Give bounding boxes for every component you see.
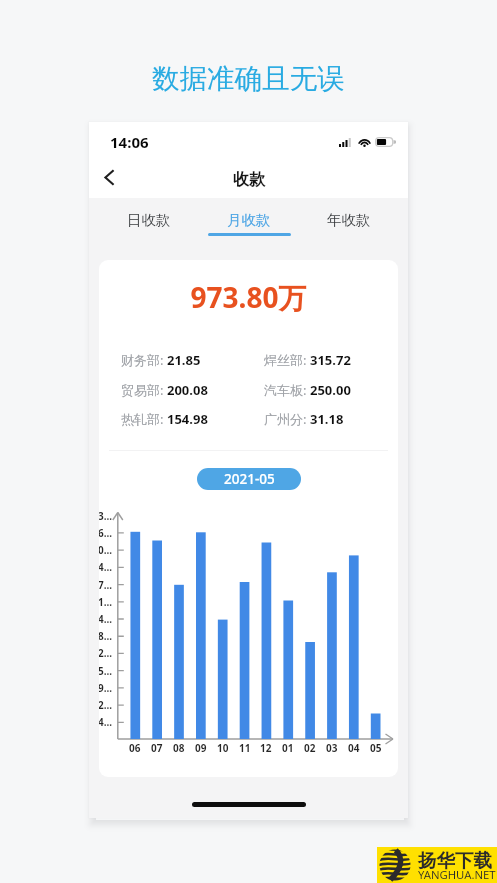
staticText: 财务部: bbox=[121, 351, 167, 369]
staticText: 数据准确且无误 bbox=[152, 62, 345, 97]
staticText: 08 bbox=[173, 741, 185, 755]
staticText: 0... bbox=[99, 543, 113, 557]
staticText: 2... bbox=[99, 646, 113, 660]
staticText: 31.18 bbox=[310, 410, 344, 428]
staticText: 12 bbox=[260, 741, 272, 755]
staticText: 收款 bbox=[233, 170, 265, 190]
staticText: 4... bbox=[99, 715, 113, 729]
button[interactable]: 月收款 bbox=[199, 198, 299, 245]
staticText: 扬华下载 bbox=[418, 849, 492, 872]
staticText: 5... bbox=[99, 664, 113, 678]
staticText: YANGHUA.NET bbox=[418, 867, 496, 882]
staticText: 8... bbox=[99, 629, 113, 643]
staticText: 9... bbox=[99, 681, 113, 695]
staticText: 广州分: bbox=[264, 410, 310, 428]
staticText: 250.00 bbox=[310, 381, 351, 399]
staticText: 4... bbox=[99, 560, 113, 574]
staticText: 汽车板: bbox=[264, 381, 310, 399]
staticText: 21.85 bbox=[167, 351, 201, 369]
button[interactable]: 日收款 bbox=[99, 198, 199, 245]
staticText: 7... bbox=[99, 578, 113, 592]
staticText: 315.72 bbox=[310, 351, 351, 369]
staticText: 09 bbox=[195, 741, 207, 755]
staticText: 热轧部: bbox=[121, 410, 167, 428]
staticText: 2021-05 bbox=[224, 470, 275, 488]
staticText: 1... bbox=[99, 595, 113, 609]
staticText: 3... bbox=[99, 509, 113, 523]
staticText: 14:06 bbox=[110, 132, 149, 152]
button[interactable]: Back bbox=[89, 157, 129, 198]
staticText: 10 bbox=[217, 741, 229, 755]
staticText: 05 bbox=[370, 741, 382, 755]
staticText: 贸易部: bbox=[121, 381, 167, 399]
staticText: 154.98 bbox=[167, 410, 208, 428]
staticText: 日收款 bbox=[127, 211, 171, 229]
staticText: 03 bbox=[326, 741, 338, 755]
staticText: 02 bbox=[304, 741, 316, 755]
staticText: 2... bbox=[99, 698, 113, 712]
staticText: 06 bbox=[129, 741, 141, 755]
staticText: 年收款 bbox=[327, 211, 371, 229]
staticText: 6... bbox=[99, 526, 113, 540]
staticText: 4... bbox=[99, 612, 113, 626]
staticText: 01 bbox=[282, 741, 294, 755]
staticText: 07 bbox=[151, 741, 163, 755]
staticText: 焊丝部: bbox=[264, 351, 310, 369]
staticText: 200.08 bbox=[167, 381, 208, 399]
button[interactable]: 年收款 bbox=[299, 198, 399, 245]
staticText: 04 bbox=[348, 741, 360, 755]
staticText: 973.80万 bbox=[99, 278, 398, 316]
button[interactable]: 2021-05 bbox=[197, 468, 301, 490]
staticText: 月收款 bbox=[227, 211, 271, 229]
staticText: 11 bbox=[239, 741, 251, 755]
